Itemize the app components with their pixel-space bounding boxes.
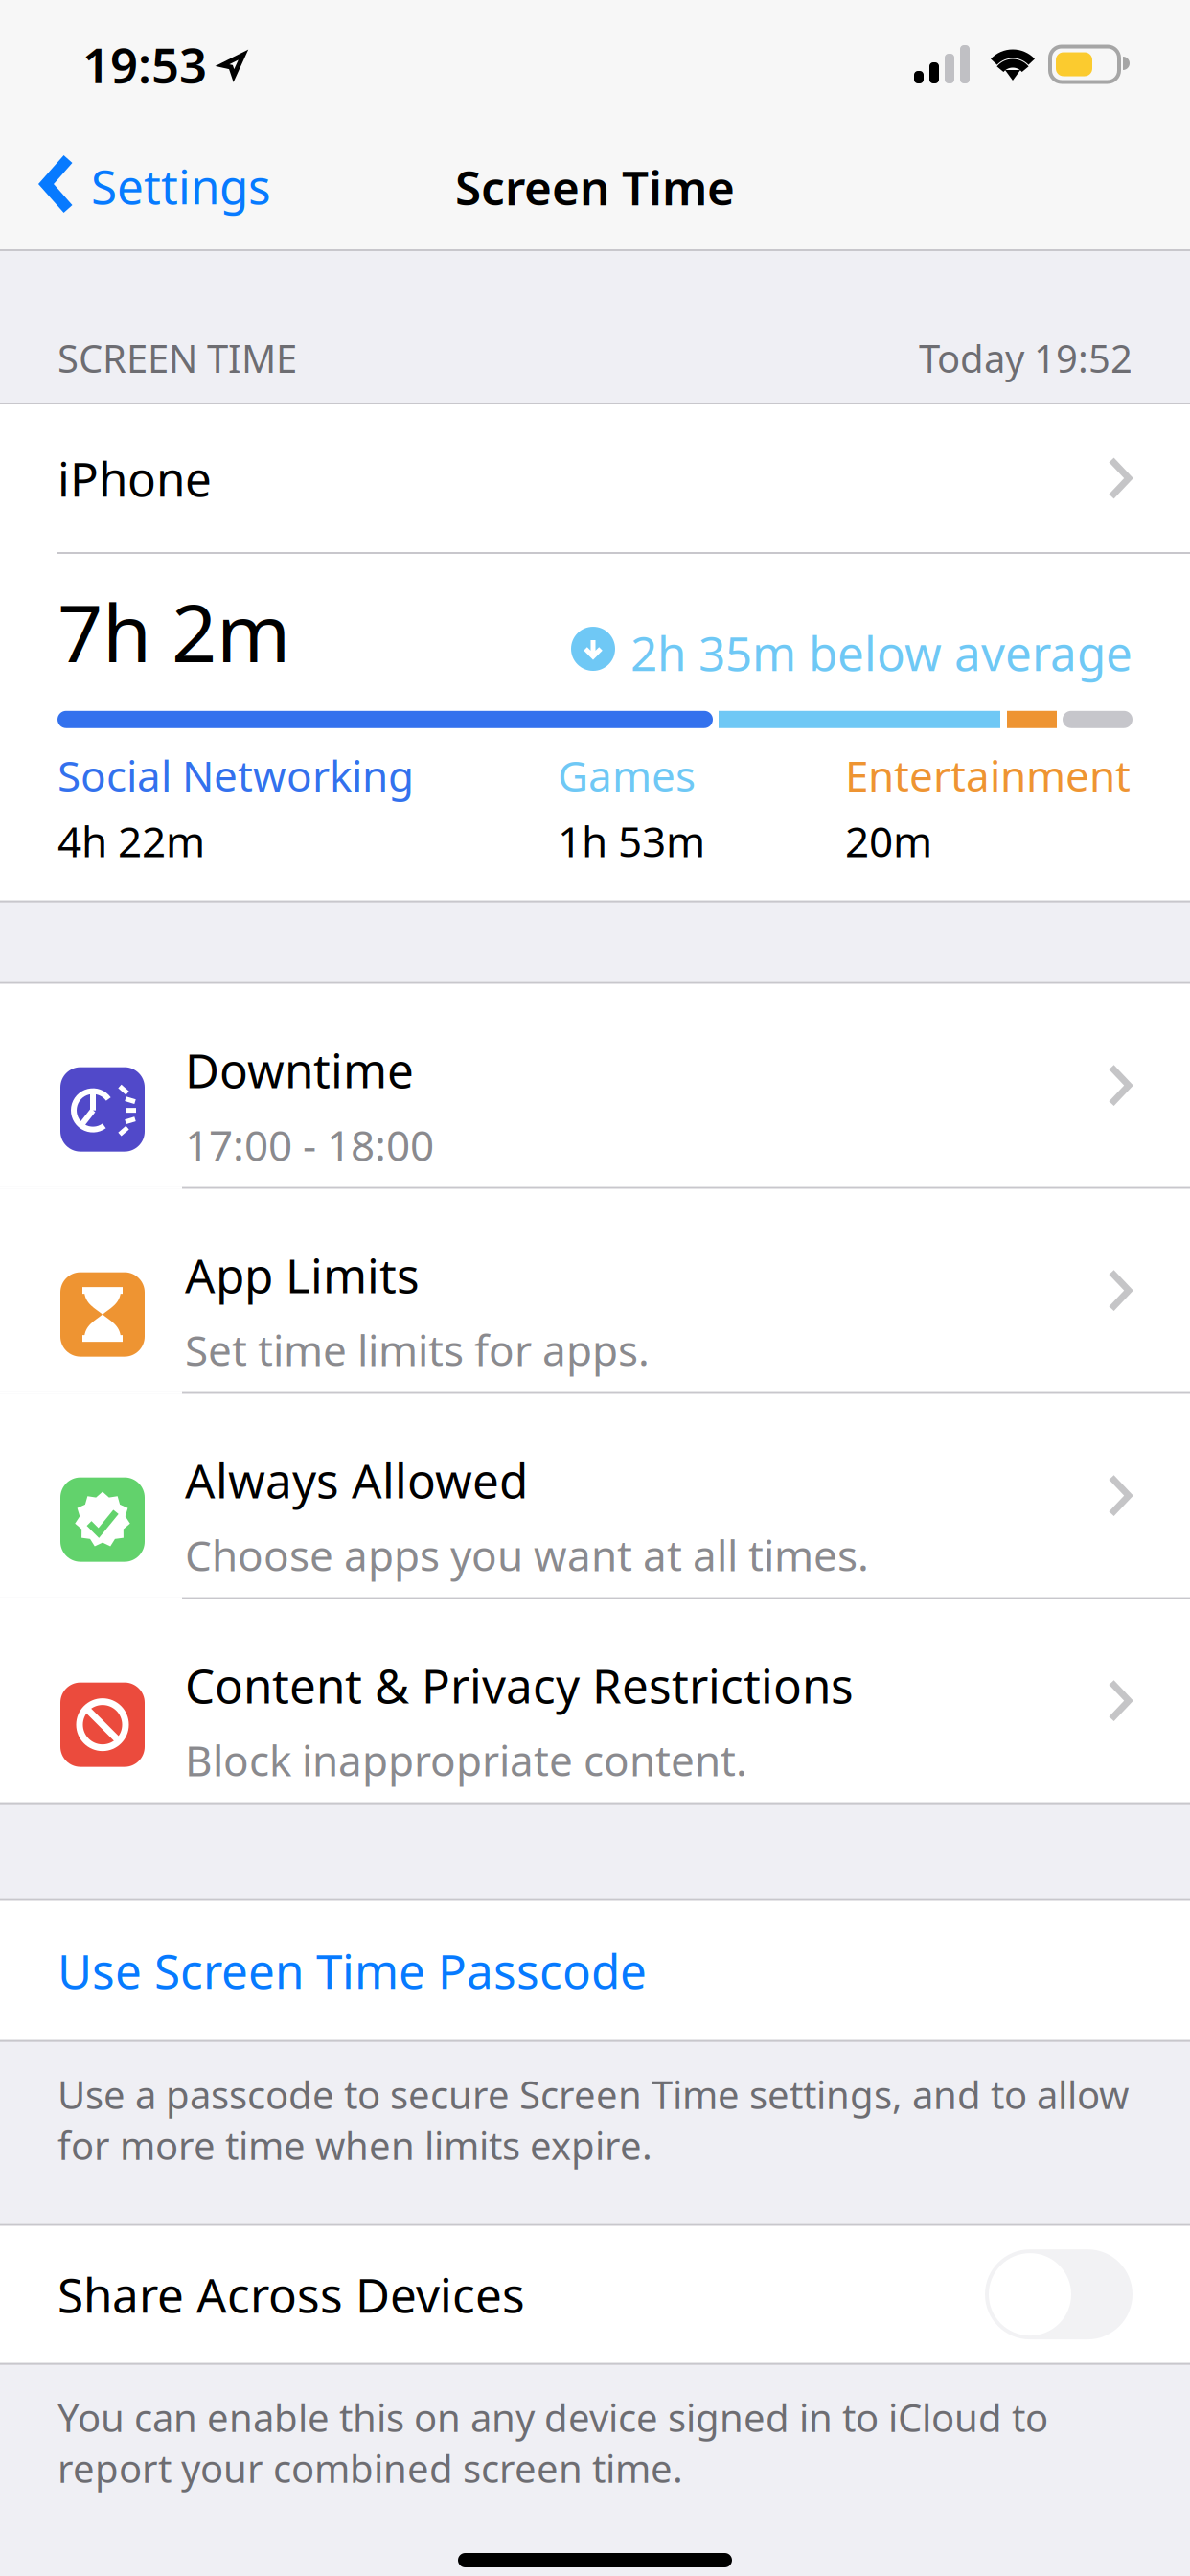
staticText: Use a passcode to secure Screen Time set… (57, 2069, 1129, 2170)
staticText: You can enable this on any device signed… (57, 2392, 1048, 2493)
staticText: Always Allowed (185, 1449, 528, 1511)
staticText: 4h 22m (57, 813, 205, 869)
button[interactable]: Always Allowed (0, 1394, 1190, 1597)
button[interactable]: Use Screen Time Passcode (0, 1901, 1190, 2040)
staticText: 19:53 (82, 32, 207, 97)
staticText: Today 19:52 (919, 332, 1133, 383)
staticText: Settings (91, 154, 271, 217)
staticText: 17:00 - 18:00 (185, 1117, 434, 1173)
staticText: Choose apps you want at all times. (185, 1527, 869, 1583)
staticText: 1h 53m (558, 813, 705, 869)
staticText: 2h 35m below average (630, 621, 1133, 684)
staticText: SCREEN TIME (57, 332, 297, 383)
staticText: Block inappropriate content. (185, 1732, 747, 1788)
staticText: 20m (845, 813, 932, 869)
staticText: Share Across Devices (57, 2263, 525, 2326)
staticText: Use Screen Time Passcode (57, 1939, 647, 2002)
staticText: Social Networking (57, 747, 414, 803)
staticText: 7h 2m (57, 579, 290, 684)
button[interactable]: Settings (0, 115, 290, 249)
staticText: Downtime (185, 1039, 414, 1101)
button[interactable]: App Limits (0, 1189, 1190, 1392)
staticText: iPhone (57, 447, 212, 510)
staticText: Games (558, 747, 696, 803)
button[interactable]: Content & Privacy Restrictions (0, 1599, 1190, 1802)
staticText: Set time limits for apps. (185, 1322, 650, 1378)
button[interactable]: Downtime (0, 984, 1190, 1187)
staticText: Entertainment (845, 747, 1131, 803)
button[interactable]: iPhone (0, 404, 1190, 552)
staticText: Content & Privacy Restrictions (185, 1654, 854, 1717)
staticText: Screen Time (455, 155, 735, 218)
staticText: App Limits (185, 1244, 420, 1306)
